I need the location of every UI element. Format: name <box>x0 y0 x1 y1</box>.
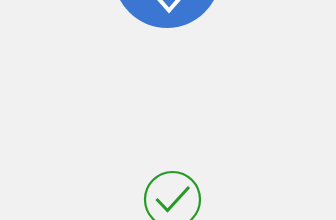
button[interactable]: Download <box>0 0 336 220</box>
button[interactable]: Completed <box>0 0 336 220</box>
